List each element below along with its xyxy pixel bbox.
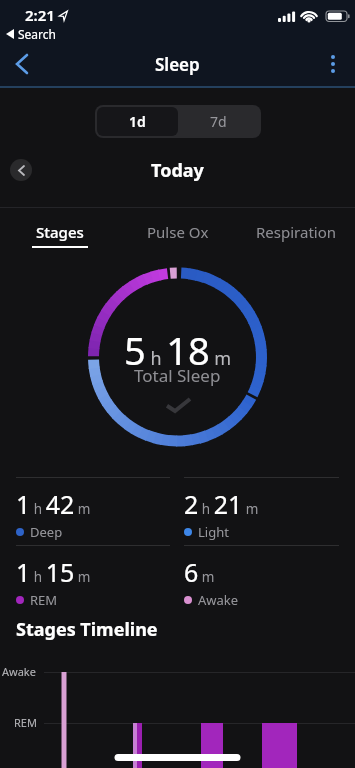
- button[interactable]: Stages: [0, 208, 119, 255]
- staticText: Respiration: [256, 222, 337, 242]
- button[interactable]: [315, 46, 351, 82]
- staticText: Awake: [198, 591, 239, 609]
- staticText: 7d: [210, 112, 227, 131]
- staticText: 2 h 21 m: [184, 487, 259, 521]
- staticText: REM: [30, 591, 58, 609]
- button[interactable]: 7d: [178, 107, 259, 136]
- staticText: 1 h 15 m: [16, 555, 91, 589]
- staticText: 2:21: [25, 5, 55, 25]
- staticText: Sleep: [155, 53, 200, 76]
- staticText: Deep: [30, 523, 63, 541]
- button[interactable]: 1d: [97, 107, 178, 136]
- button[interactable]: Search: [6, 26, 56, 42]
- button[interactable]: [10, 159, 32, 181]
- staticText: Total Sleep: [134, 364, 221, 387]
- staticText: 1 h 42 m: [16, 487, 91, 521]
- staticText: 6 m: [184, 555, 215, 589]
- staticText: 1d: [129, 112, 146, 131]
- staticText: Awake: [2, 664, 36, 679]
- button[interactable]: Respiration: [237, 208, 355, 255]
- staticText: Pulse Ox: [147, 222, 209, 242]
- staticText: Today: [151, 158, 204, 183]
- button[interactable]: [4, 46, 40, 82]
- staticText: Stages: [36, 222, 84, 242]
- button[interactable]: Pulse Ox: [119, 208, 237, 255]
- staticText: Light: [198, 523, 229, 541]
- staticText: Search: [18, 26, 56, 42]
- staticText: REM: [14, 715, 37, 730]
- staticText: Stages Timeline: [16, 617, 158, 642]
- staticText: 5 h 18 m: [124, 324, 232, 376]
